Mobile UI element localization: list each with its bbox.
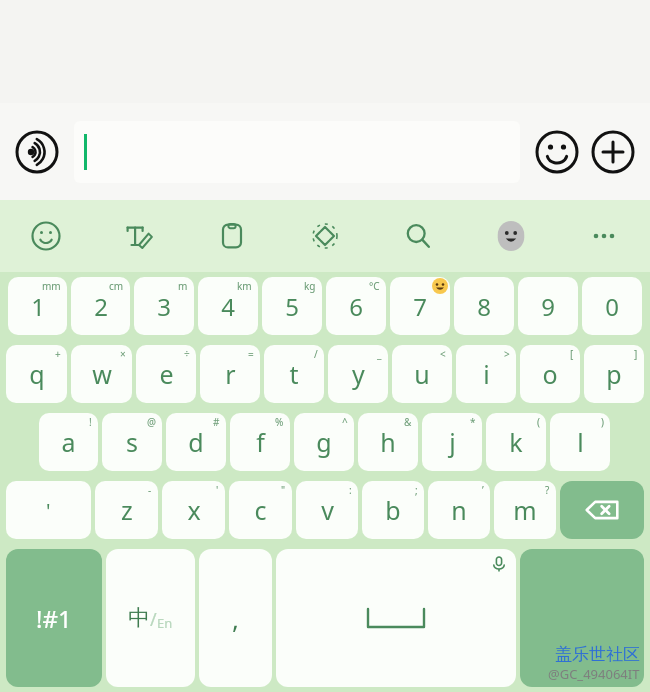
button[interactable]: u — [392, 345, 452, 403]
button[interactable]: o — [520, 345, 580, 403]
staticText: e — [159, 357, 174, 391]
staticText: mm — [42, 279, 61, 293]
button[interactable]: m — [494, 481, 556, 539]
button[interactable]: Backspace — [560, 481, 644, 539]
button[interactable]: f — [230, 413, 290, 471]
staticText: < — [440, 347, 446, 361]
button[interactable]: !#1 — [6, 549, 102, 687]
button[interactable]: 0 — [582, 277, 642, 335]
staticText: @GC_494064IT — [548, 665, 640, 683]
button[interactable]: b — [362, 481, 424, 539]
staticText: % — [275, 415, 284, 429]
staticText: 6 — [349, 290, 363, 323]
button[interactable]: x — [162, 481, 225, 539]
button[interactable]: c — [229, 481, 292, 539]
button[interactable]: , — [199, 549, 272, 687]
button[interactable]: r — [200, 345, 260, 403]
button[interactable]: t — [264, 345, 324, 403]
staticText: y — [352, 357, 365, 391]
button[interactable]: 8 — [454, 277, 514, 335]
staticText: 8 — [477, 290, 491, 323]
button[interactable]: j — [422, 413, 482, 471]
button[interactable]: Voice input — [14, 129, 60, 175]
staticText: 盖乐世社区 — [555, 644, 640, 665]
button[interactable]: z — [95, 481, 158, 539]
button[interactable]: i — [456, 345, 516, 403]
button[interactable]: Stickers — [464, 200, 557, 272]
button[interactable]: Clipboard — [185, 200, 278, 272]
staticText: = — [248, 347, 254, 361]
staticText: 5 — [285, 290, 299, 323]
button[interactable]: a — [39, 413, 98, 471]
staticText: d — [188, 425, 204, 459]
staticText: ; — [415, 483, 418, 497]
button[interactable]: Space — [276, 549, 516, 687]
staticText: cm — [109, 279, 124, 293]
staticText: kg — [304, 279, 316, 293]
button[interactable]: 6 — [326, 277, 386, 335]
button[interactable]: ' — [6, 481, 91, 539]
staticText: ? — [545, 483, 550, 497]
button[interactable]: y — [328, 345, 388, 403]
button[interactable]: Emoji — [534, 129, 580, 175]
button[interactable]: More — [557, 200, 650, 272]
button[interactable]: 5 — [262, 277, 322, 335]
staticText: n — [451, 493, 467, 527]
staticText: 2 — [94, 290, 108, 323]
staticText: w — [92, 357, 112, 391]
staticText: ^ — [342, 415, 348, 429]
staticText: i — [483, 357, 490, 391]
staticText: h — [380, 425, 396, 459]
staticText: q — [29, 357, 45, 391]
staticText: , — [232, 601, 239, 636]
button[interactable]: q — [6, 345, 67, 403]
button[interactable]: Resize keyboard — [278, 200, 371, 272]
button[interactable]: 1 — [8, 277, 67, 335]
staticText: ’ — [482, 483, 484, 497]
staticText: r — [225, 357, 236, 391]
staticText: ÷ — [184, 347, 190, 361]
button[interactable]: Search — [371, 200, 464, 272]
button[interactable]: p — [584, 345, 644, 403]
staticText: ' — [216, 483, 219, 497]
button[interactable] — [74, 121, 520, 183]
staticText: m — [178, 279, 188, 293]
button[interactable]: Enter — [520, 549, 644, 687]
button[interactable]: s — [102, 413, 162, 471]
button[interactable]: Add — [590, 129, 636, 175]
staticText: t — [289, 357, 299, 391]
button[interactable]: n — [428, 481, 490, 539]
button[interactable]: 2 — [71, 277, 130, 335]
staticText: En — [157, 614, 173, 632]
staticText: a — [61, 425, 76, 459]
button[interactable]: w — [71, 345, 132, 403]
staticText: o — [542, 357, 558, 391]
staticText: 0 — [605, 290, 619, 323]
button[interactable]: g — [294, 413, 354, 471]
button[interactable]: 中 — [106, 549, 195, 687]
staticText: v — [321, 493, 334, 527]
staticText: p — [606, 357, 622, 391]
button[interactable]: 3 — [134, 277, 194, 335]
button[interactable]: 9 — [518, 277, 578, 335]
button[interactable]: k — [486, 413, 546, 471]
staticText: 7 — [413, 290, 427, 323]
staticText: [ — [570, 347, 574, 361]
staticText: 4 — [221, 290, 235, 323]
button[interactable]: Handwriting — [92, 200, 185, 272]
button[interactable]: 4 — [198, 277, 258, 335]
staticText: @ — [147, 415, 156, 429]
button[interactable]: 7 — [390, 277, 450, 335]
button[interactable]: v — [296, 481, 358, 539]
button[interactable]: Emoticons — [0, 200, 92, 272]
button[interactable]: e — [136, 345, 196, 403]
staticText: & — [404, 415, 412, 429]
button[interactable]: h — [358, 413, 418, 471]
staticText: g — [316, 425, 332, 459]
staticText: m — [513, 493, 537, 527]
staticText: > — [504, 347, 510, 361]
button[interactable]: l — [550, 413, 610, 471]
button[interactable]: d — [166, 413, 226, 471]
staticText: + — [55, 347, 61, 361]
staticText: km — [237, 279, 252, 293]
